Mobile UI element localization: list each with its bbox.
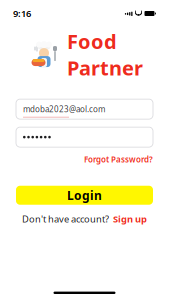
staticText: Food Partner	[67, 28, 143, 81]
button[interactable]: Sign up	[113, 213, 147, 225]
button[interactable]: Forgot Password?	[84, 154, 153, 165]
staticText: 9:16	[13, 7, 31, 20]
staticText: Login	[67, 187, 102, 203]
staticText: mdoba2023	[23, 104, 69, 114]
staticText: @aol.com	[69, 104, 105, 114]
staticText: Don't have account?	[22, 213, 109, 225]
button[interactable]: Login	[16, 186, 153, 205]
staticText: Forgot Password?	[84, 154, 153, 165]
staticText: Sign up	[113, 213, 147, 225]
